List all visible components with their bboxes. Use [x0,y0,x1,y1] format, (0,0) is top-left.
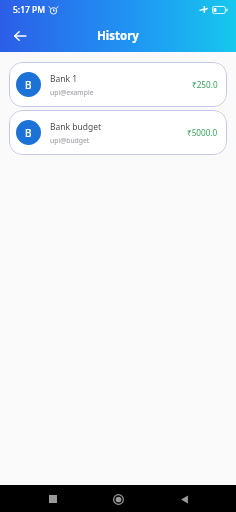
button[interactable]: Back [171,486,197,512]
staticText: ₹5000.0 [187,127,218,138]
staticText: upi@budget [50,136,90,145]
staticText: B [25,126,32,140]
staticText: Bank budget [50,121,102,133]
button[interactable]: B [9,62,227,107]
button[interactable]: Back [8,24,32,48]
staticText: upi@example [50,88,94,97]
button[interactable]: Home [105,486,131,512]
staticText: B [25,78,32,92]
button[interactable]: Recent apps [40,486,66,512]
staticText: History [97,28,139,44]
button[interactable]: B [9,110,227,155]
staticText: ₹250.0 [192,79,218,90]
staticText: 5:17 PM [13,4,46,16]
staticText: Bank 1 [50,73,78,85]
